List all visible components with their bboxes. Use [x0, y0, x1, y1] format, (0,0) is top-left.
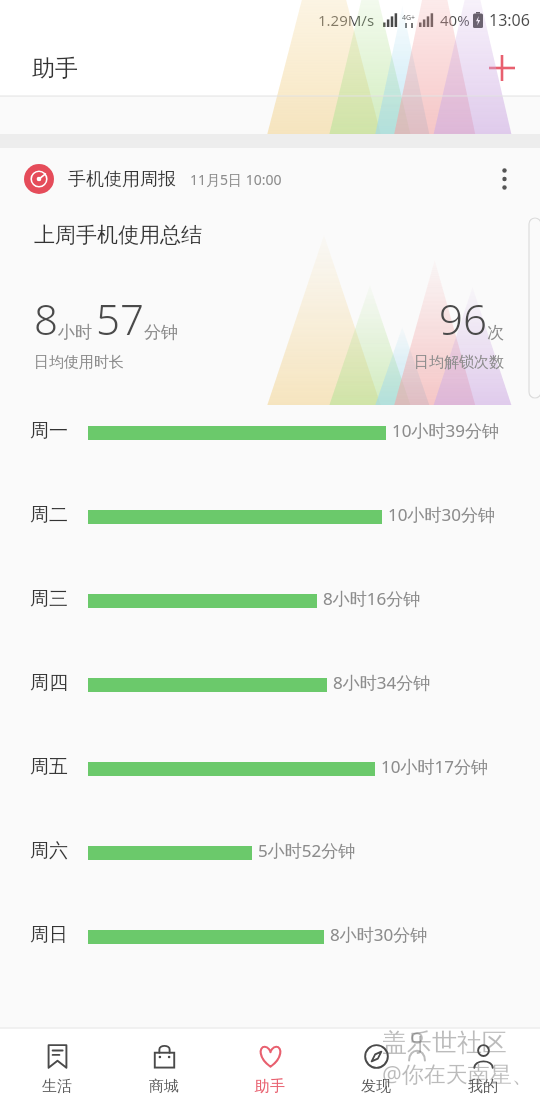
staticText: 周二: [30, 503, 88, 527]
button[interactable]: 周四: [0, 657, 540, 741]
staticText: 日均解锁次数: [414, 353, 504, 372]
button[interactable]: Add: [478, 44, 526, 92]
staticText: 分钟: [144, 322, 178, 343]
staticText: 8: [34, 290, 58, 347]
staticText: 5小时52分钟: [258, 839, 356, 862]
staticText: 1.29M/s: [318, 10, 375, 30]
staticText: 13:06: [489, 9, 530, 31]
staticText: 周四: [30, 671, 88, 695]
staticText: 11月5日 10:00: [190, 170, 282, 189]
staticText: 盖乐世社区: [382, 1027, 507, 1058]
button[interactable]: 周二: [0, 489, 540, 573]
staticText: 周一: [30, 419, 88, 443]
staticText: 次: [487, 322, 504, 343]
staticText: 生活: [42, 1077, 72, 1096]
staticText: 周五: [30, 755, 88, 779]
staticText: @你在天南星、: [382, 1058, 534, 1088]
staticText: 上周手机使用总结: [34, 222, 202, 248]
staticText: 8小时30分钟: [330, 923, 428, 946]
staticText: 4G+: [402, 13, 416, 23]
button[interactable]: 手机使用周报: [0, 148, 540, 210]
button[interactable]: 周五: [0, 741, 540, 825]
staticText: 助手: [32, 54, 78, 83]
button[interactable]: 周一: [0, 405, 540, 489]
button[interactable]: 生活: [8, 1028, 106, 1110]
button[interactable]: 助手: [221, 1028, 319, 1110]
staticText: 小时: [58, 322, 92, 343]
staticText: 10小时17分钟: [381, 755, 488, 778]
button[interactable]: 我的: [434, 1028, 532, 1110]
button[interactable]: 发现: [327, 1028, 425, 1110]
staticText: 手机使用周报: [68, 168, 176, 191]
staticText: 助手: [255, 1077, 285, 1096]
staticText: 周三: [30, 587, 88, 611]
staticText: 周六: [30, 839, 88, 863]
button[interactable]: 周三: [0, 573, 540, 657]
staticText: 10小时39分钟: [392, 419, 499, 442]
staticText: 日均使用时长: [34, 353, 124, 372]
staticText: 96: [439, 290, 487, 347]
button[interactable]: 周日: [0, 909, 540, 993]
button[interactable]: 周六: [0, 825, 540, 909]
staticText: 10小时30分钟: [388, 503, 495, 526]
staticText: 8小时16分钟: [323, 587, 421, 610]
button[interactable]: More options: [482, 157, 526, 201]
staticText: 发现: [361, 1077, 391, 1096]
staticText: 57: [96, 290, 144, 347]
staticText: 40%: [440, 10, 470, 30]
staticText: 我的: [468, 1077, 498, 1096]
staticText: 商城: [149, 1077, 179, 1096]
button[interactable]: 商城: [115, 1028, 213, 1110]
staticText: 周日: [30, 923, 88, 947]
staticText: 8小时34分钟: [333, 671, 431, 694]
